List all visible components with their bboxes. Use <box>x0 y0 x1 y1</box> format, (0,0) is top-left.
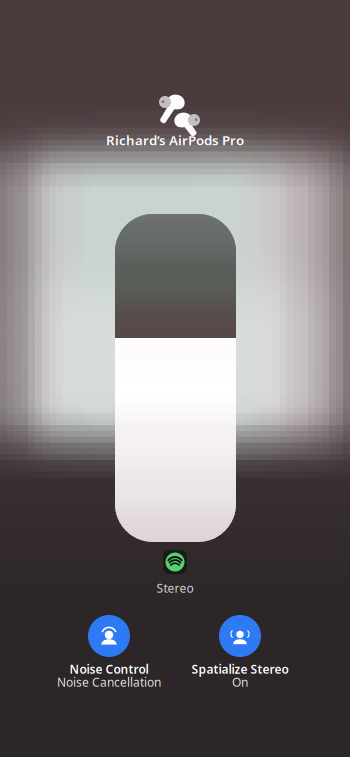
staticText: On <box>232 674 248 690</box>
button[interactable]: Spotify, Stereo <box>156 550 193 596</box>
staticText: Noise Control <box>69 661 148 677</box>
button[interactable]: Volume <box>115 214 236 542</box>
button[interactable]: Noise Control <box>44 615 174 693</box>
staticText: Richard’s AirPods Pro <box>106 131 244 149</box>
button[interactable]: Spatialize Stereo <box>175 615 305 693</box>
staticText: Spatialize Stereo <box>191 661 288 677</box>
staticText: Stereo <box>156 580 193 596</box>
staticText: Noise Cancellation <box>57 674 161 690</box>
